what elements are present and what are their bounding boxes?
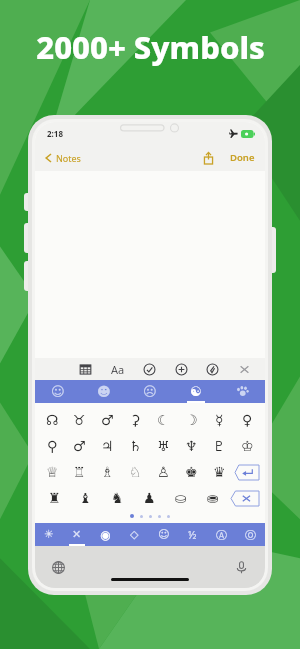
button[interactable]: Symbol set 6 bbox=[178, 523, 207, 546]
button[interactable]: ♚ bbox=[177, 459, 205, 485]
button[interactable]: Notes bbox=[43, 149, 83, 167]
staticText: ☻ bbox=[97, 384, 111, 399]
staticText: ♟ bbox=[143, 490, 156, 506]
button[interactable]: table bbox=[77, 361, 94, 378]
button[interactable]: ♂ bbox=[66, 433, 93, 459]
staticText: Ⓐ bbox=[216, 528, 227, 542]
staticText: ♂ bbox=[101, 412, 114, 428]
button[interactable]: ♟ bbox=[133, 485, 165, 511]
button[interactable]: ♕ bbox=[39, 459, 66, 485]
staticText: ♘ bbox=[129, 464, 142, 480]
staticText: ♛ bbox=[213, 464, 226, 480]
staticText: ⓞ bbox=[245, 528, 256, 542]
button[interactable]: ♃ bbox=[93, 433, 121, 459]
button[interactable]: Share bbox=[201, 149, 216, 167]
button[interactable]: ♇ bbox=[205, 433, 233, 459]
button[interactable]: ♂ bbox=[93, 407, 121, 433]
button[interactable]: Symbol set 4 bbox=[120, 523, 149, 546]
staticText: 2000+ Symbols bbox=[36, 26, 265, 68]
button[interactable]: Symbol set 3 bbox=[91, 523, 120, 546]
button[interactable]: Change keyboard bbox=[49, 558, 68, 577]
button[interactable]: ⛂ bbox=[197, 485, 229, 511]
button[interactable]: Done bbox=[228, 148, 257, 167]
button[interactable]: ☽ bbox=[177, 407, 205, 433]
button[interactable]: Markup bbox=[204, 361, 221, 378]
button[interactable]: Dictate bbox=[232, 558, 251, 577]
staticText: ♉ bbox=[73, 412, 86, 428]
button[interactable]: ♖ bbox=[66, 459, 93, 485]
staticText: ♄ bbox=[129, 438, 142, 454]
staticText: ☿ bbox=[215, 412, 224, 428]
staticText: Done bbox=[230, 151, 255, 164]
button[interactable]: Category 3 bbox=[127, 380, 173, 403]
button[interactable]: Symbol set 1 bbox=[35, 523, 63, 546]
button[interactable]: ☊ bbox=[39, 407, 66, 433]
staticText: Notes bbox=[56, 152, 81, 164]
staticText: ☹ bbox=[143, 384, 157, 399]
button[interactable]: ♘ bbox=[121, 459, 149, 485]
staticText: ☺ bbox=[158, 528, 170, 541]
staticText: ♗ bbox=[101, 464, 114, 480]
button[interactable]: Symbol set 5 bbox=[149, 523, 178, 546]
staticText: ♇ bbox=[213, 438, 226, 454]
button[interactable]: Symbol set 2 bbox=[63, 523, 91, 546]
staticText: ♖ bbox=[73, 464, 86, 480]
staticText: ♆ bbox=[185, 438, 198, 454]
staticText: Aa bbox=[111, 362, 125, 377]
button[interactable]: ♛ bbox=[205, 459, 233, 485]
staticText: ☽ bbox=[185, 412, 198, 428]
button[interactable]: ♗ bbox=[93, 459, 121, 485]
button[interactable]: ⚳ bbox=[121, 407, 149, 433]
button[interactable]: ⚲ bbox=[39, 433, 66, 459]
button[interactable]: Category 5 bbox=[219, 380, 265, 403]
staticText: 2:18 bbox=[47, 128, 63, 139]
button[interactable]: ♞ bbox=[101, 485, 133, 511]
button[interactable]: Category 2 bbox=[81, 380, 127, 403]
button[interactable]: ⛀ bbox=[165, 485, 197, 511]
button[interactable]: delete bbox=[231, 487, 259, 509]
staticText: ♚ bbox=[185, 464, 198, 480]
button[interactable]: ♜ bbox=[39, 485, 70, 511]
staticText: ♃ bbox=[101, 438, 114, 454]
staticText: ♝ bbox=[79, 490, 92, 506]
button[interactable]: ♅ bbox=[149, 433, 177, 459]
staticText: ♞ bbox=[111, 490, 124, 506]
staticText: ♙ bbox=[157, 464, 170, 480]
staticText: ◉ bbox=[100, 528, 111, 542]
staticText: ♅ bbox=[157, 438, 170, 454]
button[interactable]: Category 4 bbox=[173, 380, 219, 403]
staticText: ⚳ bbox=[130, 412, 141, 428]
staticText: ◇ bbox=[130, 528, 139, 541]
button[interactable]: ♆ bbox=[177, 433, 205, 459]
staticText: ♂ bbox=[73, 438, 86, 454]
button[interactable]: ♙ bbox=[149, 459, 177, 485]
staticText: ☾ bbox=[157, 412, 170, 428]
button[interactable]: Aa bbox=[109, 360, 127, 379]
button[interactable]: Checklist bbox=[141, 361, 158, 378]
staticText: ♜ bbox=[48, 490, 61, 506]
button[interactable]: ♉ bbox=[66, 407, 93, 433]
staticText: ⚲ bbox=[47, 438, 58, 454]
button[interactable]: ♀ bbox=[233, 407, 261, 433]
button[interactable]: ♔ bbox=[233, 433, 261, 459]
button[interactable]: ♄ bbox=[121, 433, 149, 459]
staticText: ⛂ bbox=[207, 490, 219, 506]
staticText: ♕ bbox=[46, 464, 59, 480]
button[interactable]: ♝ bbox=[70, 485, 101, 511]
button[interactable]: Symbol set 7 bbox=[207, 523, 236, 546]
staticText: ☊ bbox=[46, 412, 59, 428]
button[interactable]: Symbol set 8 bbox=[236, 523, 265, 546]
staticText: ♀ bbox=[242, 412, 253, 428]
staticText: ☺ bbox=[51, 384, 65, 399]
button[interactable]: return bbox=[235, 461, 259, 483]
staticText: ½ bbox=[188, 527, 197, 542]
staticText: ☯ bbox=[190, 384, 202, 399]
button[interactable]: Category 1 bbox=[35, 380, 81, 403]
button[interactable]: ☿ bbox=[205, 407, 233, 433]
button[interactable]: Add bbox=[173, 361, 190, 378]
button[interactable]: ☾ bbox=[149, 407, 177, 433]
staticText: ✕ bbox=[72, 528, 82, 541]
staticText: ⛀ bbox=[175, 490, 187, 506]
button[interactable]: Close bbox=[236, 361, 253, 378]
staticText: ♔ bbox=[241, 438, 254, 454]
